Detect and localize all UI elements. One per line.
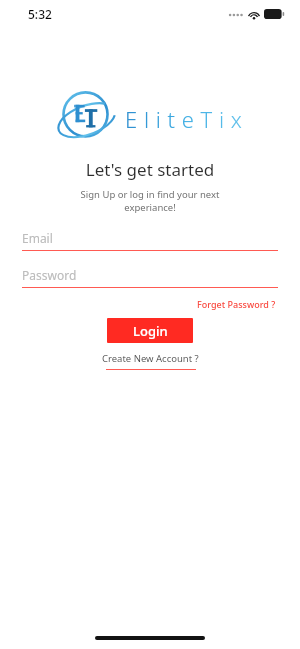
button[interactable]: Login <box>107 318 193 343</box>
staticText: E l i t e T i x <box>125 104 243 134</box>
staticText: Create New Account ? <box>102 352 199 365</box>
staticText: Sign Up or log in find your next experia… <box>40 188 260 214</box>
staticText: Login <box>133 322 168 340</box>
staticText: 5:32 <box>28 6 52 22</box>
staticText: Email <box>22 230 53 246</box>
button[interactable]: Forget Password ? <box>195 296 278 312</box>
button[interactable]: Password <box>22 263 278 288</box>
staticText: Password <box>22 267 77 283</box>
button[interactable]: Create New Account ? <box>102 352 199 370</box>
button[interactable]: Email <box>22 226 278 251</box>
staticText: Let's get started <box>0 158 300 181</box>
staticText: Forget Password ? <box>197 298 276 310</box>
